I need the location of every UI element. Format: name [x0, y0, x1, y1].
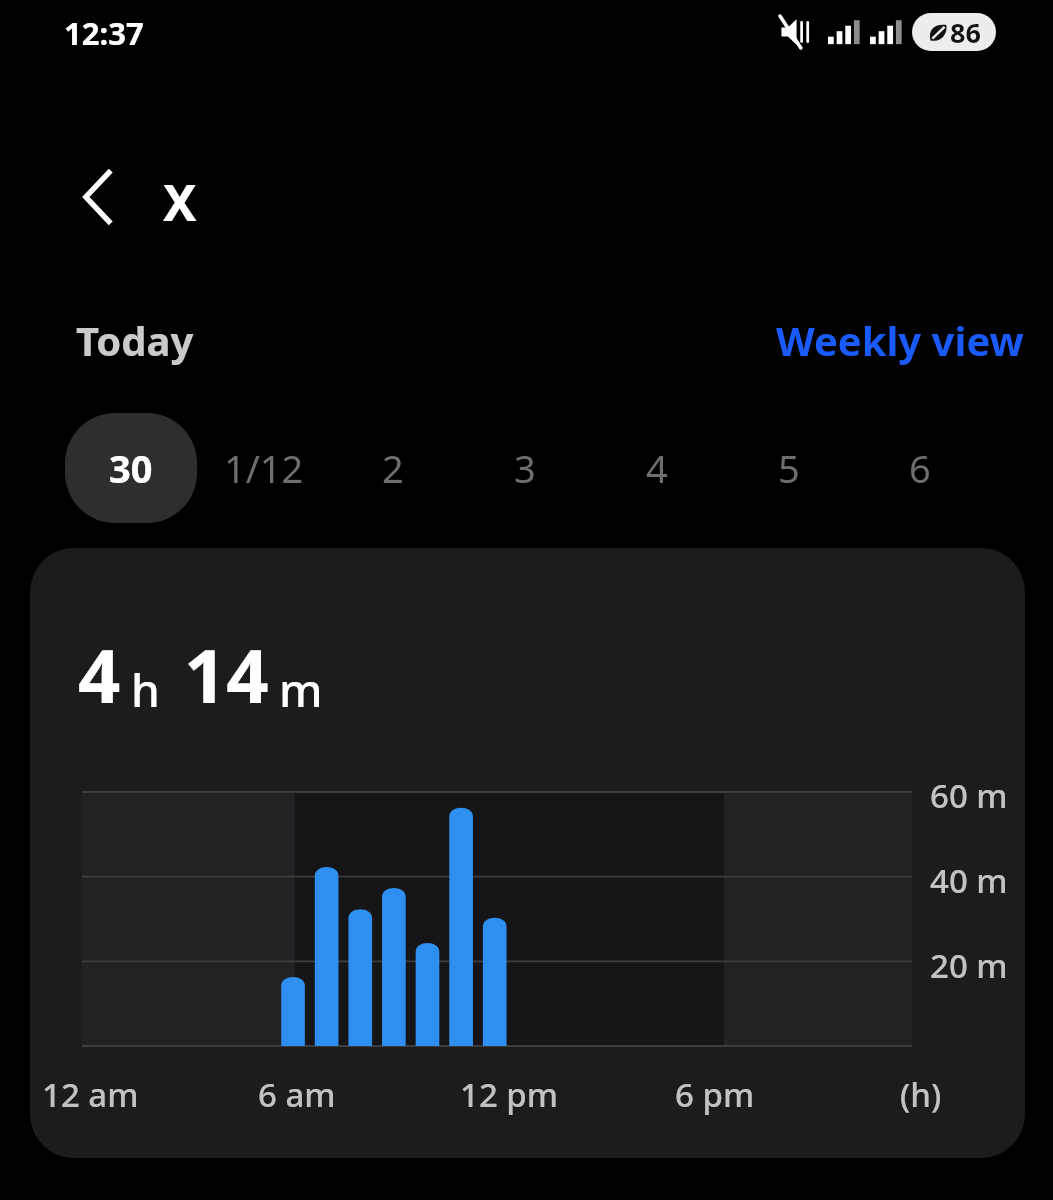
staticText: 20 m	[930, 943, 1008, 988]
button[interactable]: 1/12	[198, 413, 330, 523]
button[interactable]: 6	[854, 413, 986, 523]
staticText: Today	[76, 313, 194, 367]
button[interactable]: 4	[591, 413, 723, 523]
staticText: 4	[646, 442, 668, 494]
button[interactable]: 5	[723, 413, 855, 523]
staticText: 12 pm	[460, 1072, 559, 1117]
staticText: 2	[382, 442, 404, 494]
staticText: 4	[78, 624, 121, 725]
staticText: 60 m	[930, 773, 1008, 818]
staticText: 86	[950, 14, 981, 51]
staticText: h	[131, 658, 160, 721]
staticText: 14	[184, 624, 269, 725]
staticText: 30	[109, 442, 153, 494]
staticText: 6 am	[258, 1072, 336, 1117]
staticText: 12 am	[42, 1072, 139, 1117]
staticText: 3	[514, 442, 536, 494]
staticText: 40 m	[930, 858, 1008, 903]
button[interactable]: Weekly view	[764, 303, 1036, 377]
staticText: X	[163, 168, 197, 236]
staticText: 1/12	[224, 442, 304, 494]
staticText: 6 pm	[675, 1072, 755, 1117]
staticText: (h)	[900, 1072, 942, 1117]
button[interactable]: 3	[459, 413, 591, 523]
button[interactable]: 4	[30, 548, 1025, 1158]
staticText: m	[279, 658, 323, 721]
button[interactable]: 30	[65, 413, 197, 523]
button[interactable]: Back	[58, 158, 138, 236]
staticText: Weekly view	[776, 313, 1024, 367]
staticText: 5	[778, 442, 800, 494]
staticText: 12:37	[64, 12, 144, 54]
button[interactable]: 2	[327, 413, 459, 523]
staticText: 6	[909, 442, 931, 494]
